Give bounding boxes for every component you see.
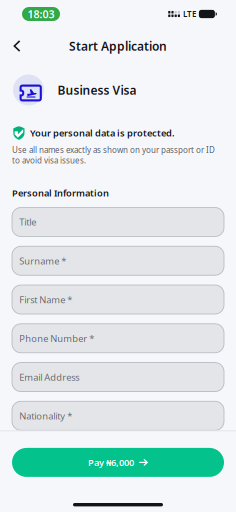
staticText: Start Application <box>69 38 167 54</box>
staticText: Your personal data is protected. <box>30 127 175 139</box>
staticText: Pay ₦6,000 <box>88 456 134 469</box>
staticText: Surname * <box>19 255 66 267</box>
button[interactable]: Surname * <box>12 246 224 275</box>
staticText: Business Visa <box>57 82 136 98</box>
staticText: 18:03 <box>27 7 54 21</box>
staticText: Personal Information <box>12 187 109 199</box>
button[interactable]: Title <box>12 207 224 236</box>
button[interactable]: First Name * <box>12 285 224 314</box>
staticText: Email Address <box>19 371 79 383</box>
staticText: Use all names exactly as shown on your p… <box>12 144 215 166</box>
button[interactable]: Pay ₦6,000 <box>12 448 224 477</box>
staticText: First Name * <box>19 293 72 306</box>
button[interactable]: Nationality * <box>12 401 224 430</box>
staticText: LTE <box>183 9 196 19</box>
button[interactable]: Phone Number * <box>12 324 224 353</box>
staticText: Title <box>19 216 36 228</box>
staticText: Phone Number * <box>19 332 94 344</box>
button[interactable]: Back <box>5 34 29 58</box>
staticText: Nationality * <box>19 410 72 422</box>
button[interactable]: Email Address <box>12 362 224 391</box>
